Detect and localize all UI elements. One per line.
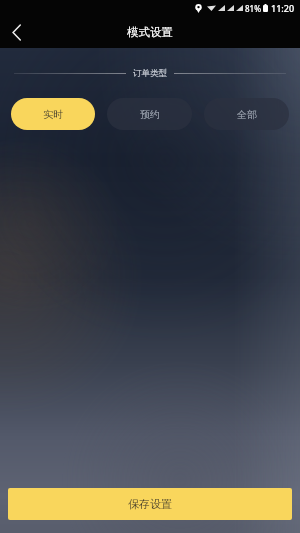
button[interactable]: 实时 xyxy=(11,98,95,130)
staticText: 全部 xyxy=(237,108,257,121)
button[interactable]: Back xyxy=(0,16,32,48)
button[interactable]: 全部 xyxy=(204,98,289,130)
button[interactable]: 保存设置 xyxy=(8,488,292,520)
staticText: 11:20 xyxy=(271,2,295,14)
staticText: 模式设置 xyxy=(127,25,173,39)
staticText: 保存设置 xyxy=(128,497,172,511)
button[interactable]: 预约 xyxy=(107,98,192,130)
staticText: 81% xyxy=(245,3,261,14)
staticText: 预约 xyxy=(140,108,160,121)
staticText: 订单类型 xyxy=(133,68,167,79)
staticText: 实时 xyxy=(43,108,63,121)
